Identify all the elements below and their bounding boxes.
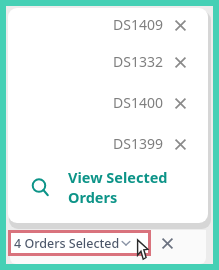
staticText: DS1400 (113, 93, 163, 112)
staticText: DS1409 (113, 15, 163, 34)
staticText: View Selected Orders (68, 167, 208, 207)
staticText: 4 Orders Selected (14, 235, 120, 252)
staticText: DS1399 (113, 134, 163, 153)
button[interactable]: Remove DS1399 (171, 135, 189, 153)
button[interactable]: Clear selection (157, 233, 177, 253)
button[interactable]: DS1409 (8, 8, 208, 41)
button[interactable]: View Selected Orders (8, 164, 208, 210)
button[interactable]: DS1332 (8, 41, 208, 82)
staticText: DS1332 (113, 52, 163, 71)
button[interactable]: DS1400 (8, 82, 208, 123)
button[interactable]: 4 Orders Selected (8, 230, 151, 256)
button[interactable]: Remove DS1409 (171, 16, 189, 34)
button[interactable]: Remove DS1400 (171, 94, 189, 112)
button[interactable]: Remove DS1332 (171, 53, 189, 71)
button[interactable]: DS1399 (8, 123, 208, 164)
